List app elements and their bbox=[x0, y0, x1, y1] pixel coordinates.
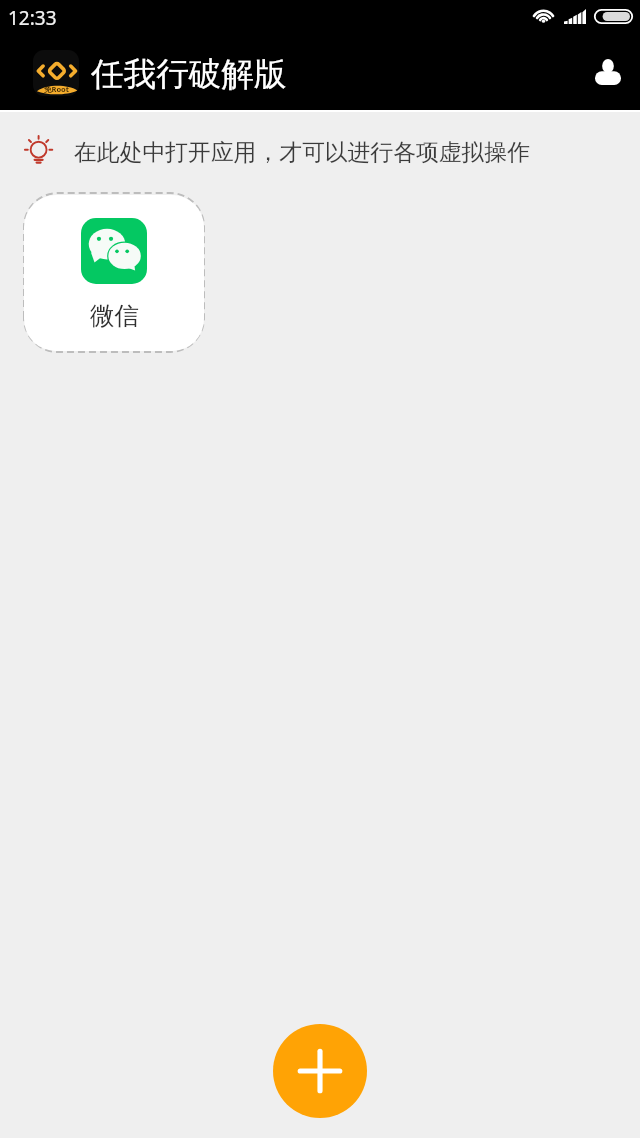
staticText: 在此处中打开应用，才可以进行各项虚拟操作 bbox=[74, 138, 530, 167]
button[interactable]: App icon bbox=[33, 50, 79, 96]
button[interactable]: Profile bbox=[580, 44, 636, 100]
staticText: 任我行破解版 bbox=[91, 54, 287, 95]
button[interactable]: 微信 bbox=[22, 191, 206, 354]
staticText: 微信 bbox=[90, 300, 139, 331]
staticText: 免Root bbox=[44, 84, 70, 94]
staticText: 12:33 bbox=[8, 5, 57, 31]
button[interactable]: Add bbox=[273, 1024, 367, 1118]
